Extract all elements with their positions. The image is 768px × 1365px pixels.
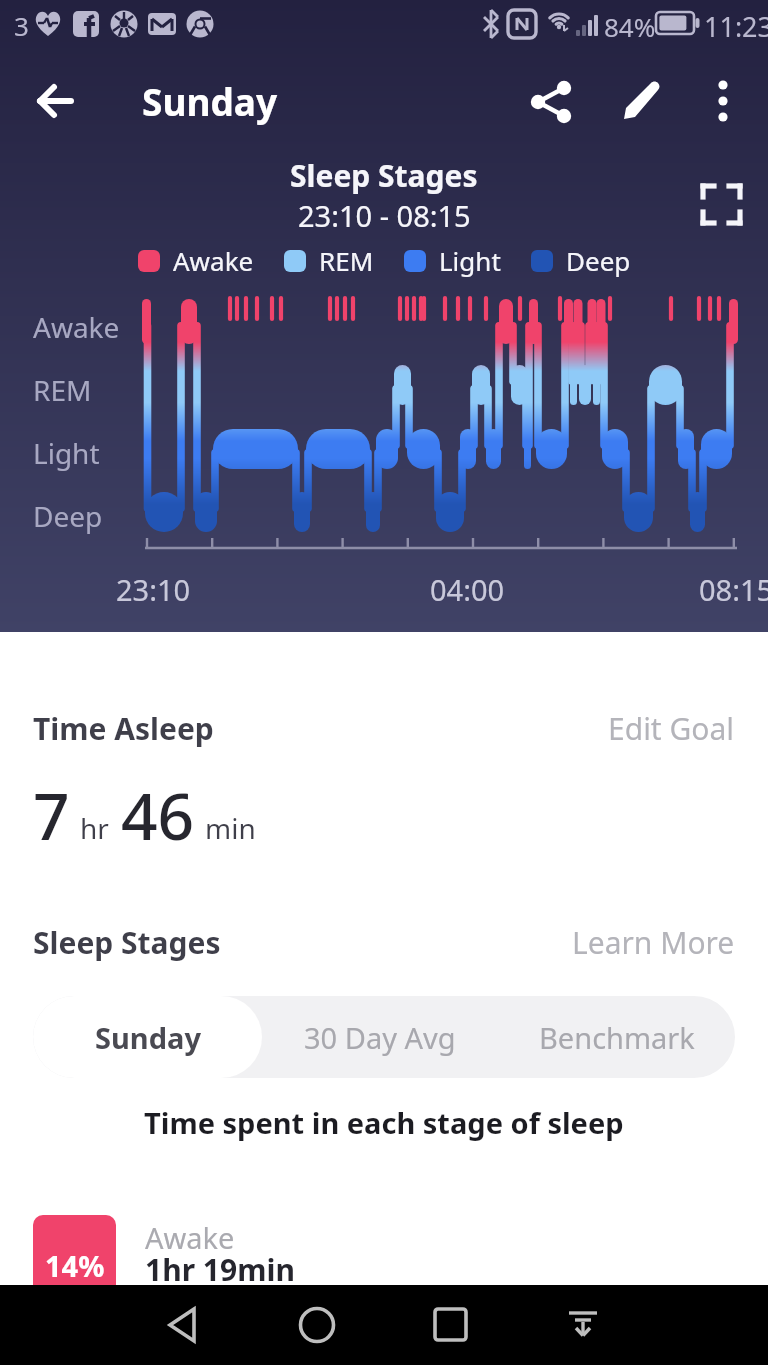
button[interactable] [622, 81, 662, 121]
button[interactable] [530, 81, 572, 123]
button[interactable] [703, 186, 740, 223]
staticText: Sleep Stages [33, 922, 221, 963]
staticText: 04:00 [430, 570, 505, 609]
staticText: hr [80, 809, 109, 847]
staticText: 3 [14, 8, 29, 43]
staticText: 84% [604, 9, 656, 44]
button[interactable]: Learn More [572, 922, 735, 963]
button[interactable]: 14% [33, 1215, 116, 1285]
staticText: Benchmark [539, 1018, 695, 1057]
button[interactable]: Benchmark [498, 996, 735, 1078]
button[interactable] [564, 1306, 602, 1344]
staticText: 14% [45, 1246, 105, 1285]
staticText: Awake [173, 243, 254, 278]
staticText: Sunday [95, 1018, 201, 1057]
staticText: Deep [566, 243, 631, 278]
staticText: 23:10 - 08:15 [298, 196, 471, 235]
staticText: min [205, 809, 256, 847]
staticText: Light [33, 434, 100, 472]
staticText: Sleep Stages [290, 155, 478, 196]
staticText: Sunday [142, 76, 278, 126]
button[interactable] [712, 80, 734, 122]
button[interactable]: Edit Goal [608, 708, 735, 749]
staticText: Awake [33, 308, 120, 346]
staticText: 23:10 [116, 570, 191, 609]
staticText: Deep [33, 497, 103, 535]
staticText: 30 Day Avg [304, 1018, 456, 1057]
staticText: 11:23 [704, 8, 768, 45]
button[interactable] [297, 1305, 337, 1345]
staticText: 08:15 [699, 570, 768, 609]
staticText: 1hr 19min [145, 1249, 295, 1285]
staticText: 7 [33, 772, 70, 859]
staticText: Awake [145, 1218, 235, 1257]
button[interactable] [166, 1307, 202, 1343]
staticText: REM [33, 371, 92, 409]
button[interactable] [433, 1307, 469, 1343]
button[interactable]: 30 Day Avg [262, 996, 498, 1078]
staticText: Time Asleep [33, 708, 214, 749]
staticText: 46 [121, 772, 195, 859]
button[interactable]: Sunday [33, 996, 262, 1078]
staticText: Light [439, 243, 501, 278]
button[interactable] [38, 84, 74, 120]
staticText: REM [319, 243, 374, 278]
staticText: Time spent in each stage of sleep [144, 1103, 624, 1142]
